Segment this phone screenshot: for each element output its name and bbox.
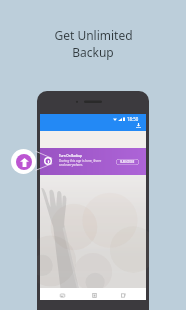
button[interactable]: Assistant (119, 291, 128, 300)
button[interactable]: Photos (58, 291, 67, 300)
staticText: Turn On Backup (59, 154, 82, 158)
button[interactable]: SUBSCRIBE (116, 159, 139, 165)
button[interactable]: Turn On Backup (40, 148, 146, 175)
button[interactable]: Download (134, 121, 142, 129)
staticText: During this age is here, there and every… (59, 159, 102, 167)
staticText: Get Unlimited (54, 27, 133, 43)
staticText: Backup (72, 44, 114, 60)
button[interactable]: Albums (90, 291, 99, 300)
staticText: 18:50 (127, 116, 139, 122)
button[interactable]: Turn on backup (11, 149, 36, 174)
staticText: SUBSCRIBE (120, 160, 135, 164)
